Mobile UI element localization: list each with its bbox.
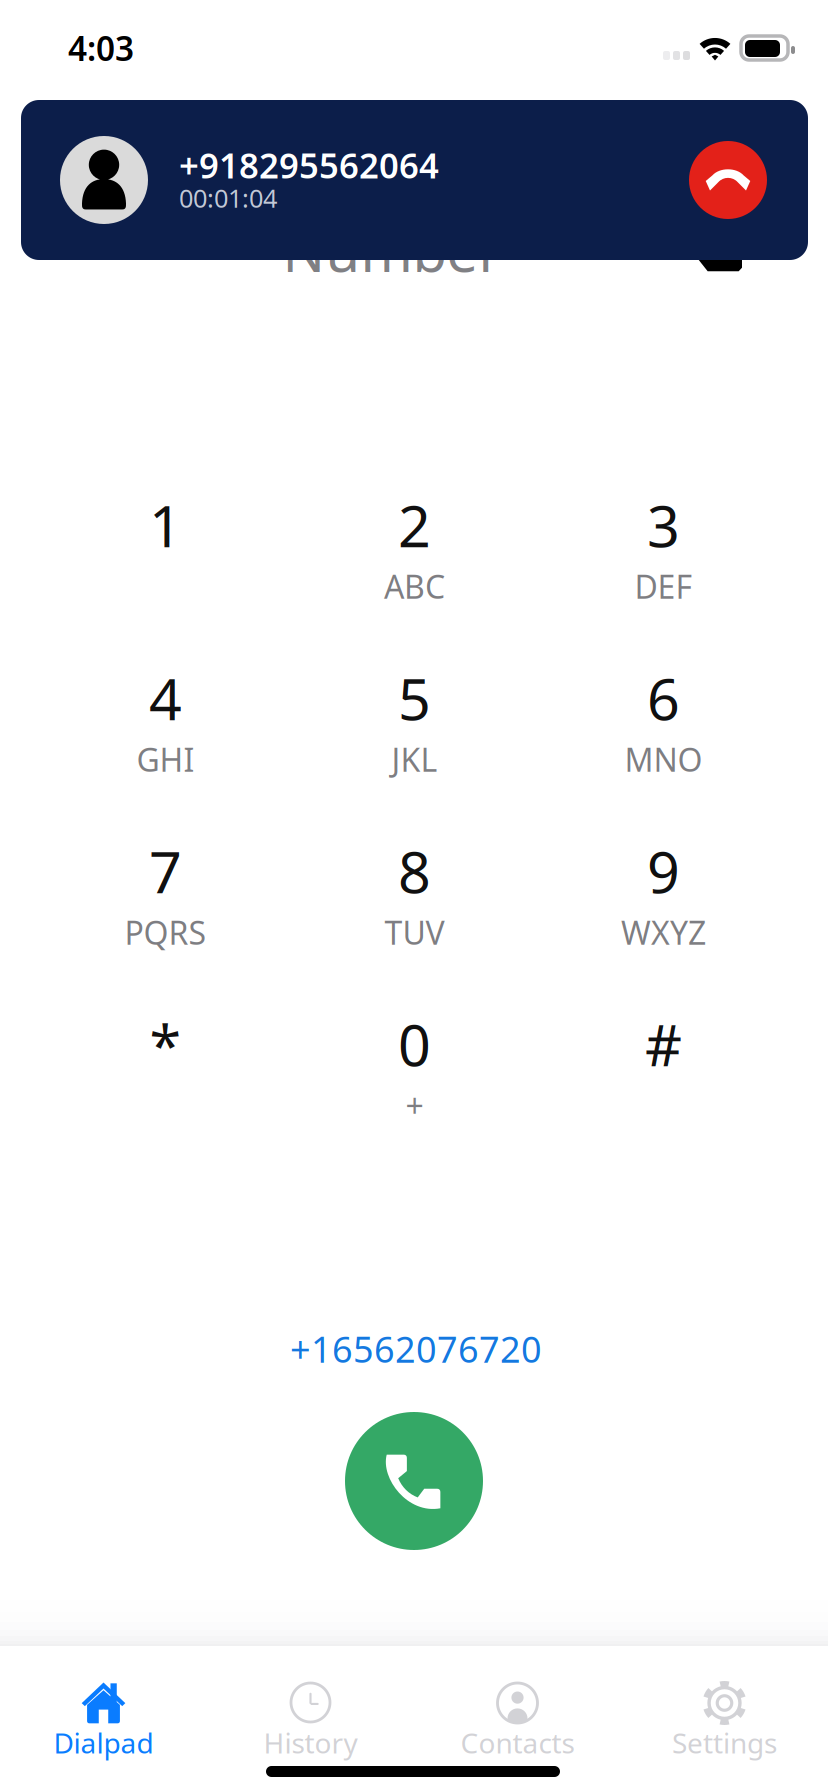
staticText: WXYZ xyxy=(621,911,706,953)
staticText: 0 xyxy=(398,1006,431,1082)
staticText: +16562076720 xyxy=(290,1325,542,1373)
staticText: Contacts xyxy=(460,1724,574,1761)
button[interactable]: Call xyxy=(345,1412,483,1550)
button[interactable]: 3 xyxy=(539,492,788,665)
staticText: 8 xyxy=(398,833,431,909)
staticText: 5 xyxy=(398,660,431,736)
staticText: 00:01:04 xyxy=(179,181,277,215)
button[interactable]: Delete xyxy=(685,227,751,281)
staticText: MNO xyxy=(624,738,702,780)
button[interactable]: Dialpad xyxy=(0,1646,207,1792)
staticText: # xyxy=(645,1006,682,1082)
staticText: × xyxy=(716,235,731,271)
button[interactable]: History xyxy=(207,1646,414,1792)
staticText: + xyxy=(405,1084,423,1126)
staticText: Dialpad xyxy=(53,1724,153,1761)
button[interactable]: End call xyxy=(689,141,767,219)
button[interactable]: 0 xyxy=(290,1011,539,1184)
staticText: +918295562064 xyxy=(179,142,439,188)
button[interactable]: 7 xyxy=(41,838,290,1011)
button[interactable]: 4 xyxy=(41,665,290,838)
staticText: 4 xyxy=(149,660,182,736)
button[interactable]: 6 xyxy=(539,665,788,838)
staticText: GHI xyxy=(136,738,194,780)
staticText: 2 xyxy=(398,487,431,563)
staticText: TUV xyxy=(384,911,444,953)
staticText: 4:03 xyxy=(68,26,134,70)
button[interactable]: * xyxy=(41,1011,290,1184)
staticText: Settings xyxy=(672,1724,777,1761)
button[interactable]: Contacts xyxy=(414,1646,621,1792)
staticText: PQRS xyxy=(124,911,206,953)
staticText: 3 xyxy=(647,487,680,563)
button[interactable]: 8 xyxy=(290,838,539,1011)
staticText: Number xyxy=(282,213,501,287)
staticText: JKL xyxy=(391,738,437,780)
staticText: * xyxy=(149,1006,181,1082)
staticText: 6 xyxy=(647,660,680,736)
button[interactable]: # xyxy=(539,1011,788,1184)
button[interactable]: 2 xyxy=(290,492,539,665)
staticText: 7 xyxy=(149,833,182,909)
staticText: ABC xyxy=(384,565,445,607)
button[interactable]: 1 xyxy=(41,492,290,665)
button[interactable]: Settings xyxy=(621,1646,828,1792)
staticText: History xyxy=(263,1724,357,1761)
staticText: 1 xyxy=(149,487,182,563)
staticText: DEF xyxy=(634,565,692,607)
button[interactable]: 9 xyxy=(539,838,788,1011)
button[interactable]: 5 xyxy=(290,665,539,838)
staticText: 9 xyxy=(647,833,680,909)
